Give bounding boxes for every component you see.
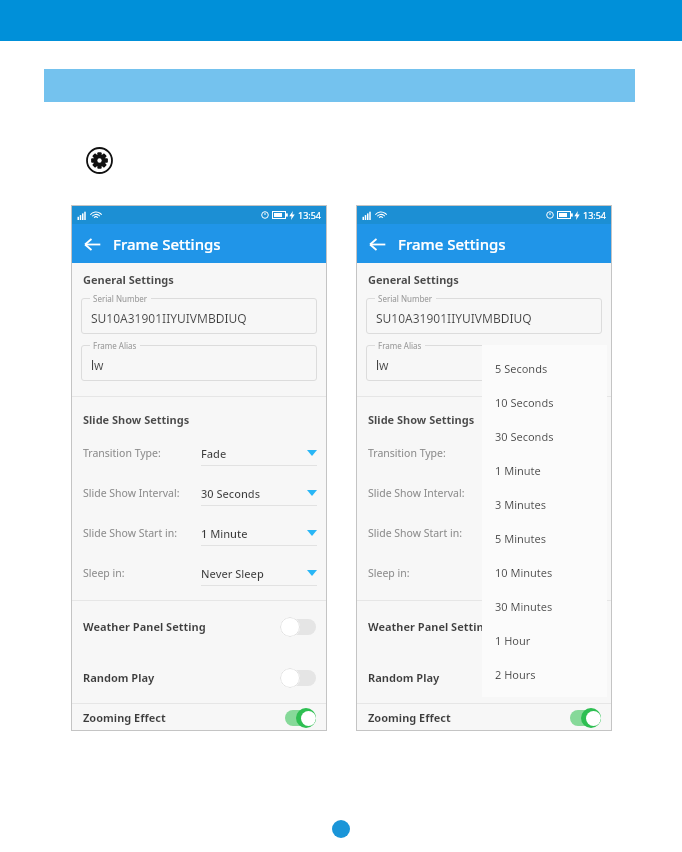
staticText: Slide Show Interval: (368, 486, 465, 500)
staticText: 1 Minute (495, 463, 541, 478)
staticText: 5 Minutes (495, 531, 547, 546)
staticText: Serial Number (93, 293, 148, 304)
button[interactable]: Random Play (356, 652, 612, 703)
button[interactable]: Sleep in: (356, 553, 612, 593)
button[interactable]: Slide Show Interval: (356, 473, 612, 513)
button[interactable]: Random Play (71, 652, 327, 703)
staticText: Never Sleep (486, 566, 549, 581)
staticText: Frame Alias (93, 340, 137, 351)
staticText: lw (91, 357, 104, 373)
staticText: 10 Minutes (495, 565, 553, 580)
staticText: Slide Show Settings (83, 412, 190, 427)
staticText: Transition Type: (83, 446, 161, 460)
staticText: Random Play (83, 670, 155, 685)
button[interactable]: Back (78, 230, 106, 258)
staticText: 3 Minutes (495, 497, 547, 512)
staticText: Slide Show Start in: (368, 526, 462, 540)
button[interactable]: Transition Type: (71, 433, 327, 473)
staticText: 1 Minute (201, 526, 248, 541)
staticText: 5 Seconds (495, 361, 548, 376)
staticText: Slide Show Start in: (83, 526, 177, 540)
staticText: SU10A31901IIYUIVMBDIUQ (376, 310, 532, 326)
staticText: Weather Panel Setting (368, 619, 491, 634)
staticText: 2 Hours (495, 667, 536, 682)
staticText: Frame Alias (378, 340, 422, 351)
staticText: Never Sleep (201, 566, 264, 581)
staticText: Slide Show Interval: (83, 486, 180, 500)
staticText: lw (376, 357, 389, 373)
staticText: Random Play (368, 670, 440, 685)
button[interactable]: Back (363, 230, 391, 258)
button[interactable]: 1 Minute (482, 453, 607, 487)
button[interactable]: 10 Seconds (482, 385, 607, 419)
button[interactable]: 3 Minutes (482, 487, 607, 521)
staticText: Sleep in: (368, 566, 410, 580)
staticText: Zooming Effect (83, 710, 166, 725)
button[interactable]: Slide Show Start in: (356, 513, 612, 553)
staticText: Frame Settings (113, 234, 221, 254)
staticText: 1 Minute (486, 526, 533, 541)
button[interactable]: Slide Show Start in: (71, 513, 327, 553)
staticText: Sleep in: (83, 566, 125, 580)
staticText: General Settings (368, 272, 459, 287)
staticText: 30 Seconds (201, 486, 260, 501)
staticText: 10 Seconds (495, 395, 554, 410)
staticText: 30 Minutes (495, 599, 553, 614)
staticText: General Settings (83, 272, 174, 287)
button[interactable]: Page 1 (332, 820, 350, 838)
button[interactable]: Sleep in: (71, 553, 327, 593)
staticText: Transition Type: (368, 446, 446, 460)
button[interactable]: Serial Number (366, 298, 602, 334)
staticText: 13:54 (298, 209, 322, 221)
button[interactable]: 30 Minutes (482, 589, 607, 623)
button[interactable]: 2 Hours (482, 657, 607, 691)
button[interactable]: 10 Minutes (482, 555, 607, 589)
button[interactable]: 1 Hour (482, 623, 607, 657)
button[interactable]: Weather Panel Setting (356, 601, 612, 652)
staticText: Weather Panel Setting (83, 619, 206, 634)
button[interactable]: 5 Minutes (482, 521, 607, 555)
staticText: 13:54 (583, 209, 607, 221)
button[interactable]: Slide Show Interval: (71, 473, 327, 513)
staticText: Zooming Effect (368, 710, 451, 725)
staticText: Fade (201, 446, 227, 461)
button[interactable]: Frame Alias (366, 345, 602, 381)
button[interactable]: Zooming Effect (356, 704, 612, 731)
staticText: SU10A31901IIYUIVMBDIUQ (91, 310, 247, 326)
staticText: Slide Show Settings (368, 412, 475, 427)
button[interactable]: Settings (86, 147, 113, 174)
button[interactable]: Transition Type: (356, 433, 612, 473)
staticText: Frame Settings (398, 234, 506, 254)
button[interactable]: 30 Seconds (482, 419, 607, 453)
staticText: 1 Hour (495, 633, 531, 648)
button[interactable]: 5 Seconds (482, 351, 607, 385)
button[interactable]: Frame Alias (81, 345, 317, 381)
staticText: Serial Number (378, 293, 433, 304)
staticText: 30 Seconds (495, 429, 554, 444)
button[interactable]: Weather Panel Setting (71, 601, 327, 652)
button[interactable]: Serial Number (81, 298, 317, 334)
button[interactable]: Zooming Effect (71, 704, 327, 731)
